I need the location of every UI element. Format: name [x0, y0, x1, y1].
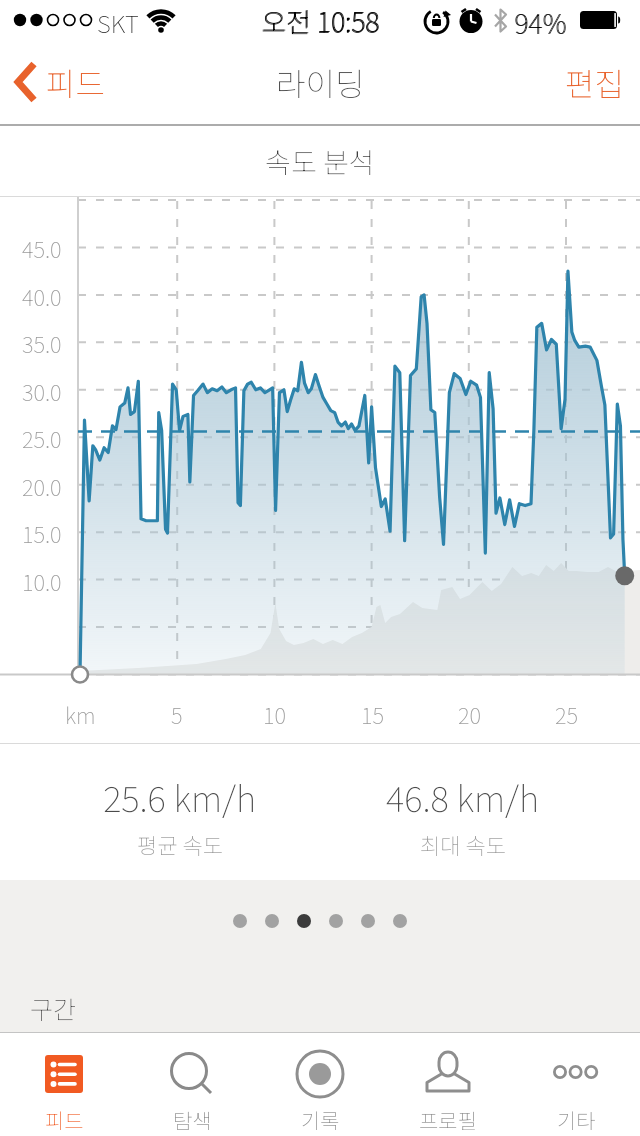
staticText: 오전 10:58: [261, 2, 380, 41]
staticText: 15: [361, 698, 384, 730]
staticText: 오전 10:58: [262, 1, 381, 40]
staticText: 최대 속도: [420, 828, 506, 860]
staticText: 10: [263, 698, 286, 730]
staticText: 10.0: [22, 565, 62, 597]
staticText: 94%: [514, 3, 566, 42]
button[interactable]: [329, 914, 343, 928]
staticText: 오전 10:58: [261, 1, 380, 40]
button[interactable]: [393, 914, 407, 928]
staticText: 20: [458, 698, 481, 730]
staticText: 라이딩: [276, 59, 365, 105]
staticText: 25.0: [22, 422, 62, 454]
staticText: 40.0: [22, 280, 62, 312]
staticText: 30.0: [22, 375, 62, 407]
button[interactable]: [265, 914, 279, 928]
button[interactable]: 편집: [565, 59, 624, 105]
button[interactable]: 프로필: [384, 1033, 512, 1134]
staticText: 25.6 km/h: [103, 771, 257, 822]
button[interactable]: 기록: [256, 1033, 384, 1134]
staticText: 94%: [515, 3, 567, 42]
staticText: 피드: [45, 1105, 84, 1134]
button[interactable]: 기타: [512, 1033, 640, 1134]
staticText: 25: [555, 698, 578, 730]
staticText: 피드: [46, 59, 105, 105]
staticText: 35.0: [22, 327, 62, 359]
staticText: 프로필: [419, 1105, 477, 1134]
staticText: 5: [171, 698, 183, 730]
button[interactable]: 탐색: [128, 1033, 256, 1134]
staticText: 15.0: [22, 517, 62, 549]
staticText: 기록: [301, 1105, 340, 1134]
button[interactable]: 25.6 km/h: [30, 771, 330, 860]
staticText: 평균 속도: [137, 828, 223, 860]
staticText: 기타: [557, 1105, 596, 1134]
staticText: 편집: [565, 59, 624, 105]
staticText: 탐색: [173, 1105, 212, 1134]
button[interactable]: [361, 914, 375, 928]
staticText: 속도 분석: [265, 141, 375, 182]
staticText: 45.0: [22, 232, 62, 264]
staticText: km: [65, 698, 96, 730]
button[interactable]: [297, 914, 311, 928]
staticText: 구간: [30, 990, 77, 1026]
button[interactable]: 피드: [0, 40, 105, 124]
button[interactable]: [233, 914, 247, 928]
button[interactable]: 피드: [0, 1033, 128, 1134]
button[interactable]: 46.8 km/h: [313, 771, 613, 860]
staticText: 20.0: [22, 470, 62, 502]
staticText: SKT: [97, 5, 139, 40]
staticText: 46.8 km/h: [386, 771, 540, 822]
